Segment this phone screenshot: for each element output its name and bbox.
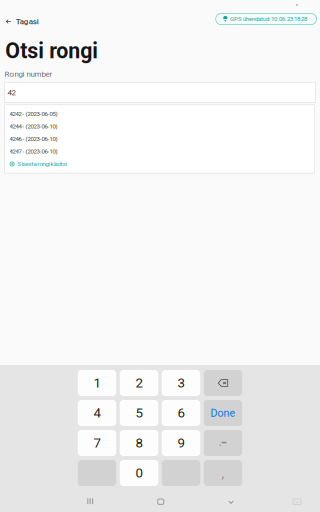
staticText: Done — [210, 407, 235, 419]
staticText: 6 — [177, 405, 184, 421]
button[interactable]: 4242 - (2023-06-05) — [4, 108, 314, 120]
staticText: Otsi rongi — [5, 38, 98, 63]
button[interactable]: 4244 - (2023-06-10) — [4, 120, 314, 133]
button[interactable]: Back — [216, 493, 246, 511]
button[interactable]: Switch keyboard — [287, 494, 307, 510]
staticText: 3 — [177, 375, 184, 391]
staticText: 4244 - (2023-06-10) — [10, 123, 58, 130]
button[interactable]: , — [204, 460, 242, 486]
staticText: 4 — [93, 405, 100, 421]
staticText: 4247 - (2023-06-10) — [10, 148, 58, 155]
button[interactable]: Punctuation — [204, 430, 242, 456]
button[interactable]: Recent apps — [75, 492, 105, 510]
button[interactable]: 4247 - (2023-06-10) — [4, 145, 314, 158]
button[interactable]: 4246 - (2023-06-10) — [4, 133, 314, 145]
staticText: 4242 - (2023-06-05) — [10, 110, 58, 117]
button[interactable]: 3 — [162, 370, 200, 396]
staticText: Rongi number — [4, 69, 52, 79]
button[interactable]: 9 — [162, 430, 200, 456]
button[interactable]: Home — [146, 493, 176, 511]
staticText: 1 — [93, 375, 100, 391]
staticText: Tagasi — [16, 17, 39, 26]
staticText: 8 — [135, 435, 142, 451]
button[interactable]: Tagasi — [0, 14, 45, 29]
button[interactable]: Sisesta rongi käsitsi — [4, 158, 314, 170]
button[interactable]: 2 — [120, 370, 158, 396]
staticText: 9 — [177, 435, 184, 451]
staticText: 7 — [93, 435, 100, 451]
button[interactable]: 7 — [78, 430, 116, 456]
staticText: Sisesta rongi käsitsi — [18, 160, 67, 167]
staticText: 42 — [7, 88, 15, 97]
staticText: GPS ühendatud: 10.06.23 18:28 — [230, 15, 307, 22]
button[interactable]: Done — [204, 400, 242, 426]
button[interactable]: Delete — [204, 370, 242, 396]
staticText: 2 — [135, 375, 142, 391]
staticText: 4246 - (2023-06-10) — [10, 135, 58, 142]
button[interactable]: GPS ühendatud: 10.06.23 18:28 — [216, 13, 316, 25]
staticText: , — [221, 465, 224, 481]
button[interactable]: 1 — [78, 370, 116, 396]
button[interactable]: 5 — [120, 400, 158, 426]
button[interactable]: 6 — [162, 400, 200, 426]
staticText: 0 — [135, 465, 142, 481]
staticText: 5 — [135, 405, 142, 421]
button[interactable]: 0 — [120, 460, 158, 486]
button[interactable]: 8 — [120, 430, 158, 456]
button[interactable]: 4 — [78, 400, 116, 426]
